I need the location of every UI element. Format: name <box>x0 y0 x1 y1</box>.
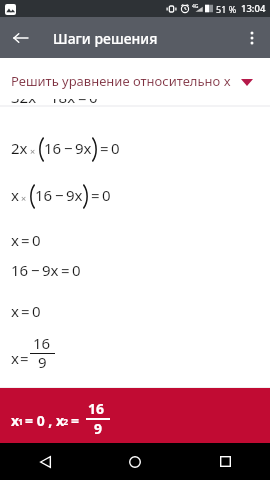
staticText: 16 <box>88 399 105 418</box>
staticText: = <box>21 230 30 250</box>
staticText: Решить уравнение относительно x <box>11 72 231 90</box>
staticText: Шаги решения <box>53 29 158 48</box>
staticText: 0 <box>89 87 98 107</box>
staticText: × <box>21 192 27 204</box>
staticText: 16 <box>35 185 53 205</box>
staticText: 0 <box>102 185 111 205</box>
staticText: 0 <box>32 301 41 321</box>
staticText: 51 % <box>216 3 237 15</box>
staticText: x <box>11 348 19 368</box>
staticText: − <box>64 138 73 158</box>
button[interactable]: Recent apps <box>192 443 258 480</box>
staticText: 1 <box>18 415 24 427</box>
staticText: 0 <box>72 260 81 280</box>
staticText: x <box>11 411 20 430</box>
staticText: 9x <box>42 260 59 280</box>
staticText: 32x <box>11 87 37 107</box>
button[interactable]: x <box>0 388 270 444</box>
staticText: x <box>11 230 19 250</box>
staticText: 16 <box>11 260 29 280</box>
staticText: 9x <box>66 185 83 205</box>
staticText: x <box>11 301 19 321</box>
button[interactable]: Back <box>0 17 42 58</box>
button[interactable]: Home <box>102 443 168 480</box>
staticText: 9x <box>75 138 92 158</box>
staticText: = 0 , <box>25 411 53 430</box>
staticText: − <box>55 185 64 205</box>
staticText: = <box>78 87 87 107</box>
staticText: = <box>20 348 29 368</box>
staticText: 18x <box>50 87 76 107</box>
staticText: x <box>56 411 65 430</box>
staticText: = <box>91 185 100 205</box>
staticText: − <box>31 260 40 280</box>
staticText: = <box>71 411 80 430</box>
button[interactable]: More options <box>234 17 270 58</box>
staticText: = <box>21 301 30 321</box>
staticText: 2 <box>63 415 69 427</box>
staticText: 0 <box>32 230 41 250</box>
staticText: = <box>61 260 70 280</box>
staticText: 4G <box>192 3 199 10</box>
button[interactable]: Back <box>12 443 78 480</box>
button[interactable]: Решить уравнение относительно x <box>0 58 270 99</box>
staticText: 9 <box>94 419 103 438</box>
staticText: − <box>39 87 48 107</box>
staticText: 2x <box>11 138 28 158</box>
staticText: = <box>100 138 109 158</box>
staticText: 16 <box>44 138 62 158</box>
staticText: 13:04 <box>241 2 266 15</box>
staticText: 0 <box>111 138 120 158</box>
staticText: 16 <box>33 333 51 353</box>
staticText: × <box>30 145 36 157</box>
staticText: 9 <box>38 352 47 372</box>
staticText: x <box>11 185 19 205</box>
